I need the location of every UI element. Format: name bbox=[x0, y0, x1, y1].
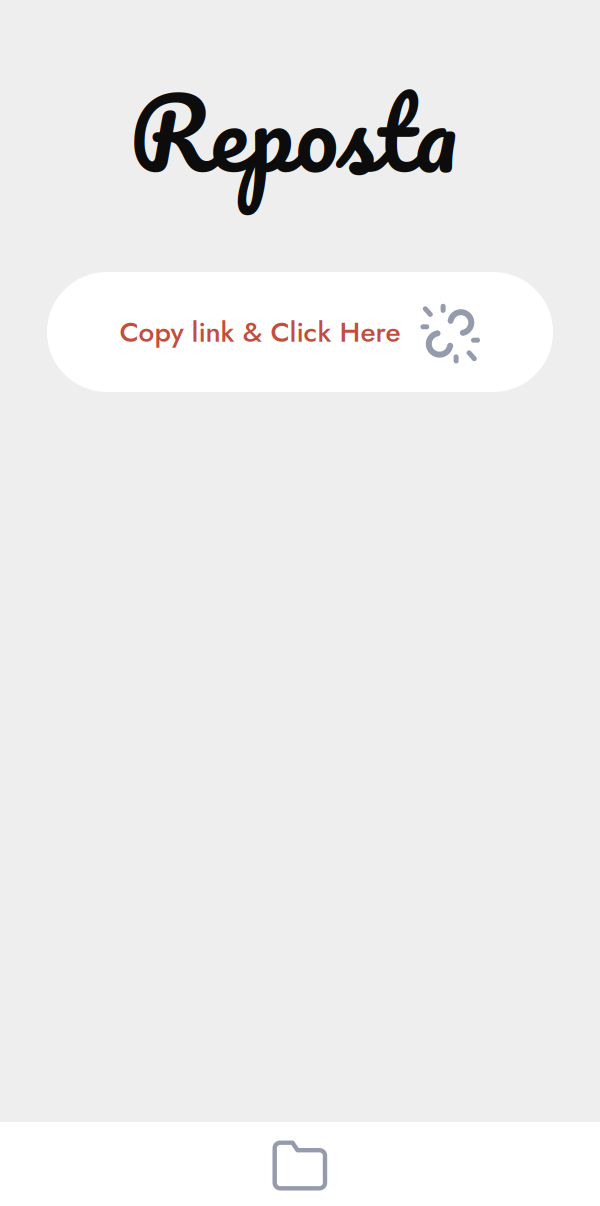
button[interactable]: Copy link & Click Here bbox=[47, 272, 553, 392]
button[interactable]: Files bbox=[245, 1122, 355, 1206]
staticText: Copy link & Click Here bbox=[119, 312, 400, 352]
staticText: Reposta bbox=[129, 49, 457, 215]
